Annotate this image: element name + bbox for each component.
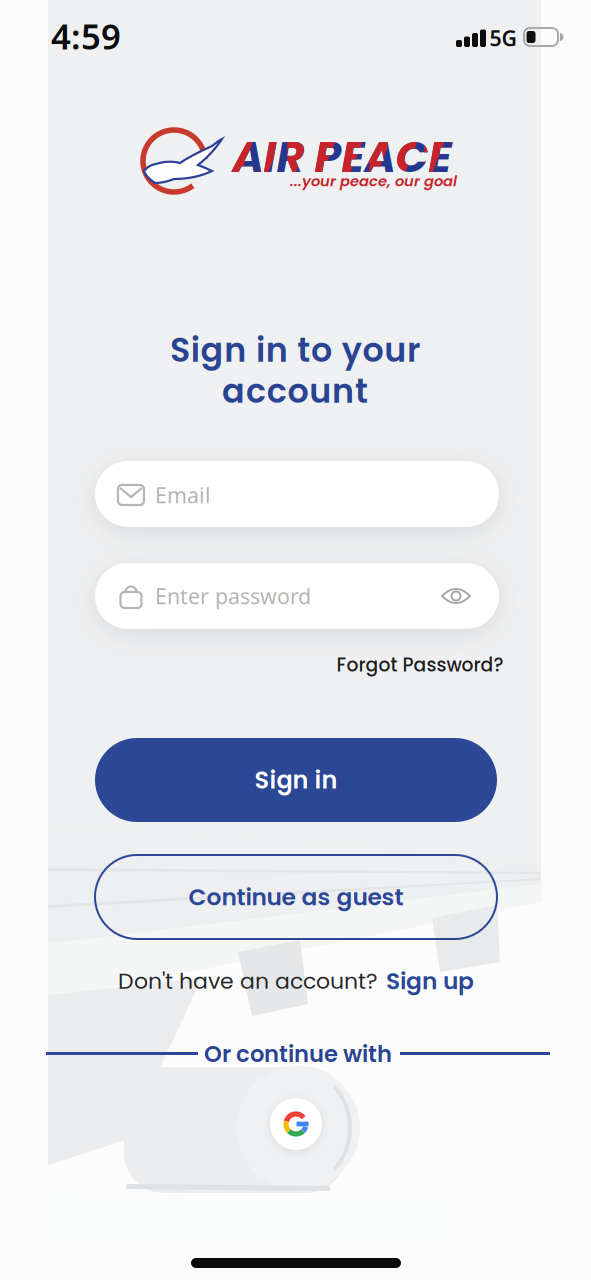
button[interactable]: Sign up bbox=[386, 965, 474, 997]
button[interactable]: Forgot Password? bbox=[336, 652, 503, 678]
button[interactable]: Show password bbox=[434, 576, 478, 616]
staticText: Sign up bbox=[386, 965, 474, 997]
button[interactable]: Sign in bbox=[95, 738, 497, 822]
staticText: Continue as guest bbox=[188, 881, 403, 913]
button[interactable]: Continue with Google bbox=[268, 1096, 324, 1152]
staticText: Don't have an account? bbox=[118, 966, 378, 996]
button[interactable]: Continue as guest bbox=[95, 855, 497, 939]
staticText: 4:59 bbox=[51, 13, 121, 59]
staticText: ...your peace, our goal bbox=[290, 171, 457, 191]
staticText: Or continue with bbox=[204, 1038, 392, 1070]
staticText: Enter password bbox=[155, 582, 311, 610]
staticText: 5G bbox=[489, 24, 516, 52]
staticText: Sign in to your bbox=[170, 327, 420, 373]
staticText: AIR PEACE bbox=[232, 127, 451, 187]
staticText: account bbox=[222, 368, 368, 414]
staticText: AIR PEACE bbox=[232, 127, 451, 187]
staticText: Sign in bbox=[254, 763, 337, 797]
staticText: Forgot Password? bbox=[336, 652, 503, 678]
staticText: Email bbox=[155, 481, 211, 509]
